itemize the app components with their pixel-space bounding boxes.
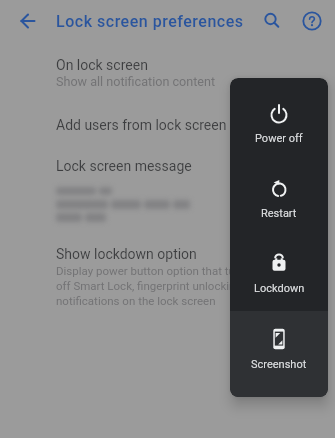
staticText: Lockdown [254,282,305,295]
staticText: Lock screen preferences [56,12,244,31]
button[interactable]: Show lockdown option [56,246,326,307]
staticText: Screenshot [251,358,307,371]
staticText: Show lockdown option [56,246,197,262]
staticText: Display power button option that turns o… [56,264,252,307]
staticText: Show all notification content [56,74,216,89]
button[interactable]: Restart [230,161,328,236]
button[interactable]: Lockdown [230,236,328,311]
button[interactable] [14,7,42,35]
staticText: On lock screen [56,57,148,73]
button[interactable]: Add users from lock screen [56,117,227,133]
button[interactable] [258,7,286,35]
button[interactable]: Power off [230,86,328,161]
button[interactable]: Lock screen message [56,158,192,174]
button[interactable] [298,7,326,35]
staticText: Restart [261,207,297,220]
button[interactable]: On lock screen [56,57,316,89]
button[interactable]: Screenshot [230,311,328,397]
staticText: Power off [255,132,303,145]
